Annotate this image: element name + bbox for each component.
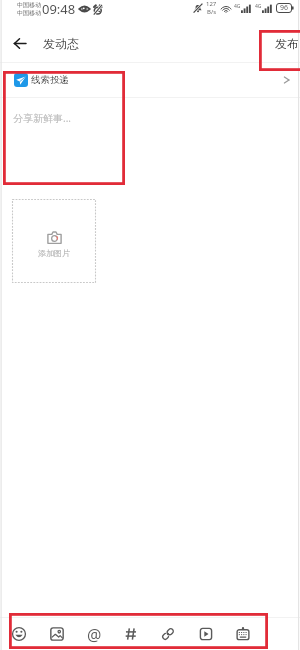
- button[interactable]: 图片: [41, 618, 73, 650]
- staticText: 添加图片: [38, 248, 70, 258]
- staticText: 4G: [234, 3, 241, 10]
- staticText: @: [87, 624, 102, 646]
- staticText: 发布: [275, 36, 299, 51]
- staticText: 96: [280, 3, 289, 13]
- button[interactable]: 线索投递: [0, 63, 300, 97]
- button[interactable]: 话题: [115, 618, 147, 650]
- staticText: 分享新鲜事...: [13, 111, 72, 125]
- button[interactable]: 发布: [261, 24, 300, 62]
- button[interactable]: 添加图片: [12, 199, 96, 283]
- staticText: 127: [206, 0, 217, 8]
- button[interactable]: 表情: [3, 618, 35, 650]
- button[interactable]: 返回: [0, 24, 40, 62]
- staticText: 线索投递: [31, 74, 69, 86]
- button[interactable]: 视频: [190, 618, 222, 650]
- staticText: B/s: [207, 8, 217, 16]
- button[interactable]: 链接: [152, 618, 184, 650]
- staticText: 中国移动: [17, 9, 41, 17]
- staticText: 中国移动: [17, 1, 41, 9]
- staticText: 发动态: [43, 36, 79, 51]
- staticText: 4G: [255, 3, 262, 10]
- staticText: 09:48: [42, 0, 76, 18]
- button[interactable]: 提及: [78, 618, 110, 650]
- button[interactable]: 键盘: [227, 618, 259, 650]
